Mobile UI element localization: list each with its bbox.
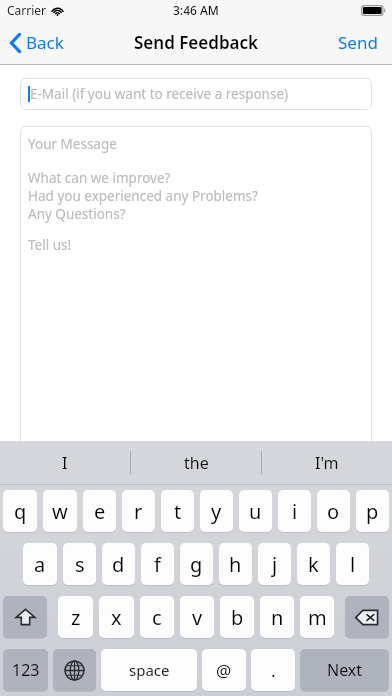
button[interactable]: n [260,596,294,638]
staticText: i [292,498,298,525]
staticText: s [75,551,85,578]
staticText: u [249,498,262,525]
button[interactable]: k [297,543,330,585]
staticText: Had you experienced any Problems? [28,187,258,205]
staticText: E-Mail (if you want to receive a respons… [30,85,289,103]
staticText: w [52,498,68,525]
button[interactable]: b [220,596,254,638]
button[interactable]: w [43,490,77,532]
button[interactable]: . [251,649,295,691]
button[interactable]: space [101,649,197,691]
staticText: 123 [12,659,40,681]
button[interactable]: Send [324,22,392,63]
button[interactable]: l [336,543,369,585]
button[interactable]: a [23,543,57,585]
button[interactable]: Next [300,649,389,691]
button[interactable]: E-Mail (if you want to receive a respons… [20,78,372,110]
staticText: space [129,660,170,680]
staticText: What can we improve? [28,169,171,187]
button[interactable]: Switch keyboard [53,649,96,691]
button[interactable]: h [219,543,252,585]
button[interactable]: p [356,490,389,532]
button[interactable]: d [102,543,135,585]
staticText: c [152,604,162,631]
button[interactable]: g [180,543,213,585]
staticText: a [34,551,46,578]
staticText: n [271,604,284,631]
staticText: l [350,551,356,578]
staticText: o [327,498,340,525]
staticText: y [211,498,222,525]
button[interactable]: @ [202,649,246,691]
staticText: v [192,604,203,631]
staticText: the [184,452,209,474]
button[interactable]: i [278,490,311,532]
staticText: p [366,498,379,525]
staticText: m [308,604,327,631]
button[interactable]: x [99,596,134,638]
button[interactable]: the [131,441,261,485]
button[interactable]: Shift [3,596,47,638]
staticText: Your Message [28,135,117,153]
staticText: I [62,452,68,474]
button[interactable]: f [141,543,174,585]
staticText: e [94,498,106,525]
staticText: b [231,604,244,631]
button[interactable]: 123 [3,649,48,691]
staticText: Send Feedback [134,31,258,54]
button[interactable]: Your Message [20,126,372,456]
staticText: g [190,551,203,578]
staticText: f [154,551,161,578]
staticText: @ [216,659,232,682]
button[interactable]: m [300,596,334,638]
staticText: Back [26,31,64,54]
button[interactable]: t [161,490,194,532]
staticText: . [271,659,276,682]
button[interactable]: y [200,490,233,532]
staticText: 3:46 AM [173,2,219,18]
staticText: q [14,498,27,525]
button[interactable]: Back [0,24,76,61]
staticText: Tell us! [28,236,72,254]
button[interactable]: u [239,490,272,532]
staticText: r [134,498,143,525]
staticText: Next [327,659,363,681]
staticText: j [272,551,278,578]
staticText: Send [338,31,378,54]
staticText: I'm [315,452,339,474]
staticText: Carrier [7,2,47,18]
button[interactable]: Backspace [345,596,389,638]
staticText: z [71,604,81,631]
button[interactable]: r [122,490,155,532]
button[interactable]: z [58,596,93,638]
button[interactable]: I [0,441,130,485]
button[interactable]: s [63,543,96,585]
button[interactable]: o [317,490,350,532]
staticText: t [174,498,182,525]
button[interactable]: e [83,490,116,532]
button[interactable]: I'm [262,441,392,485]
staticText: h [229,551,242,578]
staticText: k [308,551,319,578]
button[interactable]: v [180,596,214,638]
staticText: Any Questions? [28,205,126,223]
staticText: x [111,604,122,631]
staticText: d [112,551,125,578]
button[interactable]: q [3,490,37,532]
button[interactable]: c [140,596,174,638]
button[interactable]: j [258,543,291,585]
